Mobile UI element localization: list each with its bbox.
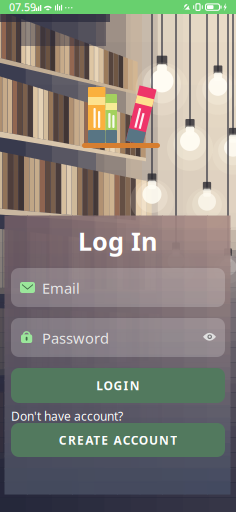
button[interactable] bbox=[0, 0, 236, 512]
button[interactable] bbox=[0, 0, 236, 512]
staticText: 07.59 bbox=[9, 0, 36, 14]
staticText: CREATE ACCOUNT bbox=[59, 432, 177, 448]
staticText: LOGIN bbox=[96, 377, 140, 393]
staticText: Log In bbox=[78, 224, 157, 258]
staticText: Password bbox=[42, 328, 109, 348]
button[interactable]: CREATE ACCOUNT bbox=[0, 0, 236, 512]
button[interactable]: LOGIN bbox=[0, 0, 236, 512]
staticText: Don't have account? bbox=[11, 408, 123, 424]
staticText: Email bbox=[42, 278, 80, 298]
